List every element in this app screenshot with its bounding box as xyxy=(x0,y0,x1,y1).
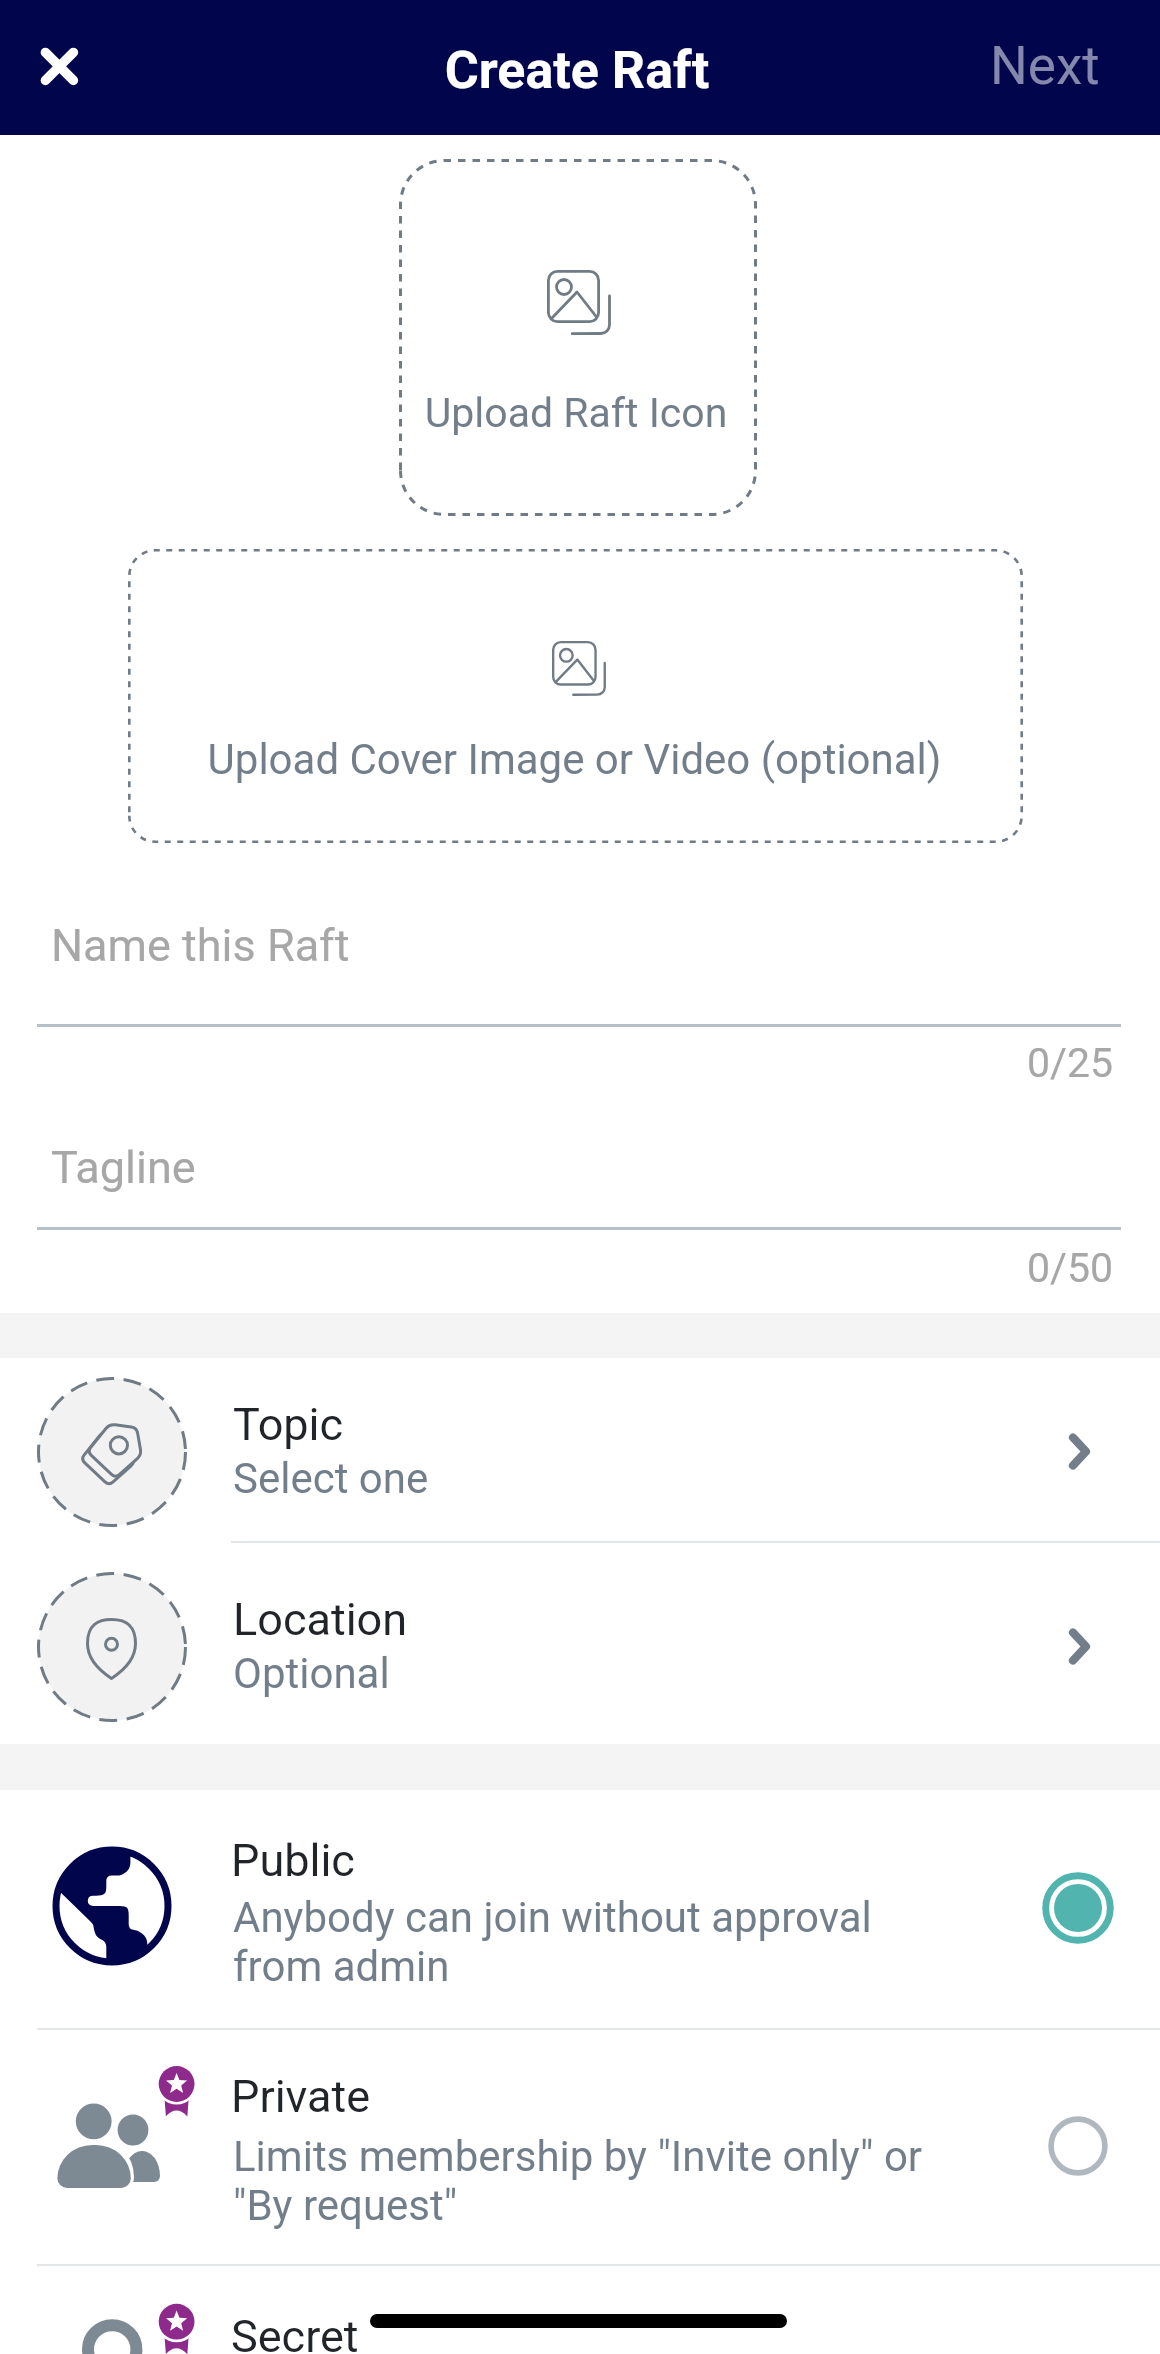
staticText: Public xyxy=(231,1834,355,1887)
staticText: "By request" xyxy=(233,2181,458,2230)
button[interactable]: Next xyxy=(970,20,1120,112)
staticText: Name this Raft xyxy=(51,919,350,972)
staticText: 0/25 xyxy=(0,1039,1113,1087)
staticText: Limits membership by "Invite only" or xyxy=(233,2132,923,2181)
staticText: Upload Cover Image or Video (optional) xyxy=(127,735,1022,784)
staticText: Location xyxy=(233,1593,408,1646)
staticText: from admin xyxy=(233,1942,450,1991)
button[interactable]: Upload Cover Image or Video xyxy=(128,549,1023,843)
button[interactable]: Private xyxy=(0,2030,1160,2264)
staticText: Anybody can join without approval xyxy=(233,1893,872,1942)
staticText: Tagline xyxy=(51,1141,196,1194)
button[interactable]: Topic xyxy=(0,1358,1160,1546)
staticText: Create Raft xyxy=(0,40,1157,101)
button[interactable]: Location xyxy=(0,1546,1160,1744)
staticText: Private xyxy=(231,2070,371,2123)
staticText: Upload Raft Icon xyxy=(397,389,755,437)
staticText: 0/50 xyxy=(0,1244,1113,1292)
button[interactable]: Public xyxy=(0,1790,1160,2028)
staticText: Next xyxy=(990,35,1100,97)
staticText: Select one xyxy=(233,1454,429,1503)
staticText: Topic xyxy=(233,1398,344,1451)
staticText: Optional xyxy=(233,1649,390,1698)
staticText: Secret xyxy=(231,2310,359,2354)
button[interactable]: Secret xyxy=(0,2266,1160,2354)
button[interactable]: Upload Raft Icon xyxy=(399,159,757,516)
button[interactable]: Close xyxy=(20,27,100,107)
